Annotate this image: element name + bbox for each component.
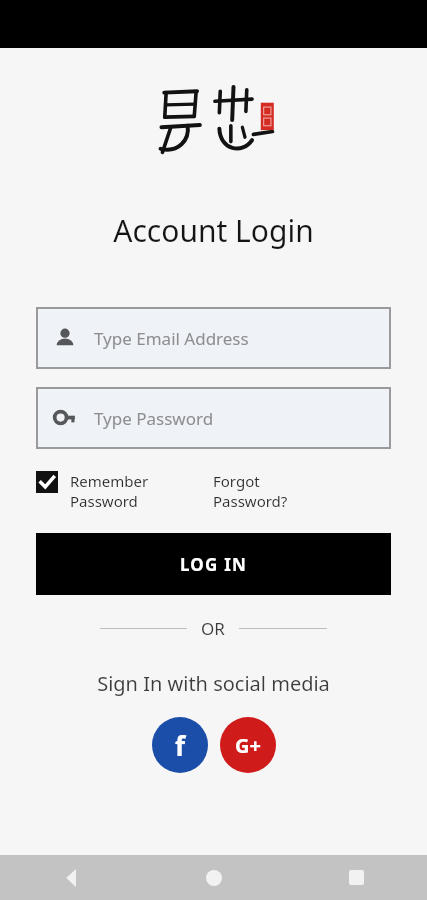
button[interactable]: Type Password (36, 387, 391, 449)
staticText: Type Password (94, 407, 214, 430)
button[interactable]: Forgot Password? (213, 471, 391, 511)
button[interactable]: LOG IN (36, 533, 391, 595)
button[interactable]: Back (0, 855, 143, 900)
staticText: Remember Password (70, 471, 149, 511)
staticText: Forgot Password? (213, 471, 288, 511)
button[interactable]: Home (143, 855, 285, 900)
staticText: LOG IN (180, 553, 247, 576)
button[interactable]: Remember Password (36, 471, 213, 511)
staticText: f (175, 728, 186, 763)
staticText: G+ (235, 732, 261, 759)
staticText: Sign In with social media (97, 670, 330, 697)
button[interactable]: Sign in with Facebook (152, 717, 208, 773)
staticText: OR (201, 617, 225, 640)
button[interactable]: Recent apps (285, 855, 427, 900)
staticText: Type Email Address (94, 327, 249, 350)
button[interactable]: Type Email Address (36, 307, 391, 369)
staticText: Account Login (113, 210, 314, 251)
button[interactable]: Sign in with Google (220, 717, 276, 773)
